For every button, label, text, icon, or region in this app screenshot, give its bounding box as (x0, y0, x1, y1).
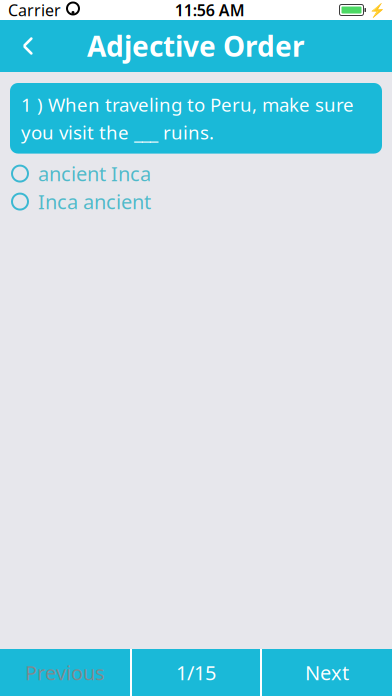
staticText: Inca ancient (38, 188, 151, 215)
button[interactable]: Next (262, 649, 392, 696)
staticText: Carrier (8, 0, 61, 21)
staticText: ⚡ (369, 2, 386, 18)
staticText: 1/15 (176, 659, 216, 686)
staticText: 1 ) When traveling to Peru, make sure yo… (21, 92, 354, 145)
button[interactable]: 1/15 (132, 649, 260, 696)
button[interactable]: ancient Inca (0, 163, 392, 185)
staticText: Previous (25, 659, 105, 686)
staticText: Adjective Order (87, 27, 305, 65)
staticText: Next (305, 659, 349, 686)
staticText: 11:56 AM (175, 0, 245, 21)
button[interactable]: Previous (0, 649, 130, 696)
button[interactable]: Back (0, 20, 56, 72)
staticText: ancient Inca (38, 160, 151, 187)
button[interactable]: Inca ancient (0, 191, 392, 213)
